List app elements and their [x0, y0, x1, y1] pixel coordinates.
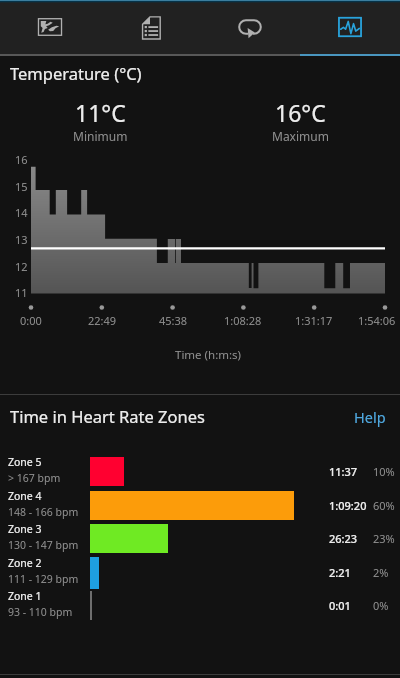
staticText: 12	[15, 259, 28, 274]
staticText: 1:54:06	[358, 313, 396, 328]
staticText: 148 - 166 bpm	[8, 505, 79, 519]
staticText: > 167 bpm	[8, 471, 61, 485]
staticText: 0%	[373, 598, 389, 613]
staticText: Time (h:m:s)	[175, 347, 242, 363]
staticText: 111 - 129 bpm	[8, 572, 79, 586]
staticText: Zone 2	[8, 556, 42, 570]
staticText: 14	[15, 205, 28, 220]
button[interactable]: Zone 2	[0, 555, 400, 589]
staticText: Zone 5	[8, 455, 42, 469]
staticText: Minimum	[73, 128, 128, 144]
button[interactable]: Charts	[300, 0, 400, 54]
staticText: Zone 4	[8, 489, 42, 503]
staticText: 2:21	[329, 565, 351, 580]
staticText: 1:08:28	[224, 313, 262, 328]
staticText: 0:00	[20, 313, 42, 328]
staticText: 23%	[373, 531, 395, 546]
staticText: 0:01	[329, 598, 351, 613]
staticText: Zone 3	[8, 522, 42, 536]
staticText: 11	[15, 285, 28, 300]
button[interactable]: Zone 4	[0, 488, 400, 522]
staticText: 22:49	[88, 313, 117, 328]
staticText: 1:09:20	[329, 498, 367, 513]
staticText: 16	[15, 152, 28, 167]
staticText: Temperature (°C)	[10, 62, 142, 84]
staticText: 60%	[373, 498, 395, 513]
button[interactable]: Zone 1	[0, 588, 400, 622]
staticText: 93 - 110 bpm	[8, 605, 73, 619]
staticText: Zone 1	[8, 589, 42, 603]
button[interactable]: Zone 3	[0, 521, 400, 555]
button[interactable]: Details	[100, 0, 200, 54]
staticText: Help	[354, 407, 386, 427]
button[interactable]: Help	[354, 407, 386, 427]
staticText: 11:37	[329, 464, 358, 479]
button[interactable]: Laps	[200, 0, 300, 54]
button[interactable]: Map	[0, 0, 100, 54]
staticText: 1:31:17	[295, 313, 333, 328]
staticText: 45:38	[159, 313, 188, 328]
staticText: Time in Heart Rate Zones	[10, 405, 205, 427]
staticText: 13	[15, 232, 28, 247]
button[interactable]: Zone 5	[0, 454, 400, 488]
staticText: 130 - 147 bpm	[8, 538, 79, 552]
staticText: 15	[15, 179, 28, 194]
staticText: Maximum	[272, 128, 329, 144]
staticText: 26:23	[329, 531, 358, 546]
staticText: 16°C	[275, 97, 326, 128]
staticText: 10%	[373, 464, 395, 479]
staticText: 2%	[373, 565, 389, 580]
staticText: 11°C	[75, 97, 126, 128]
